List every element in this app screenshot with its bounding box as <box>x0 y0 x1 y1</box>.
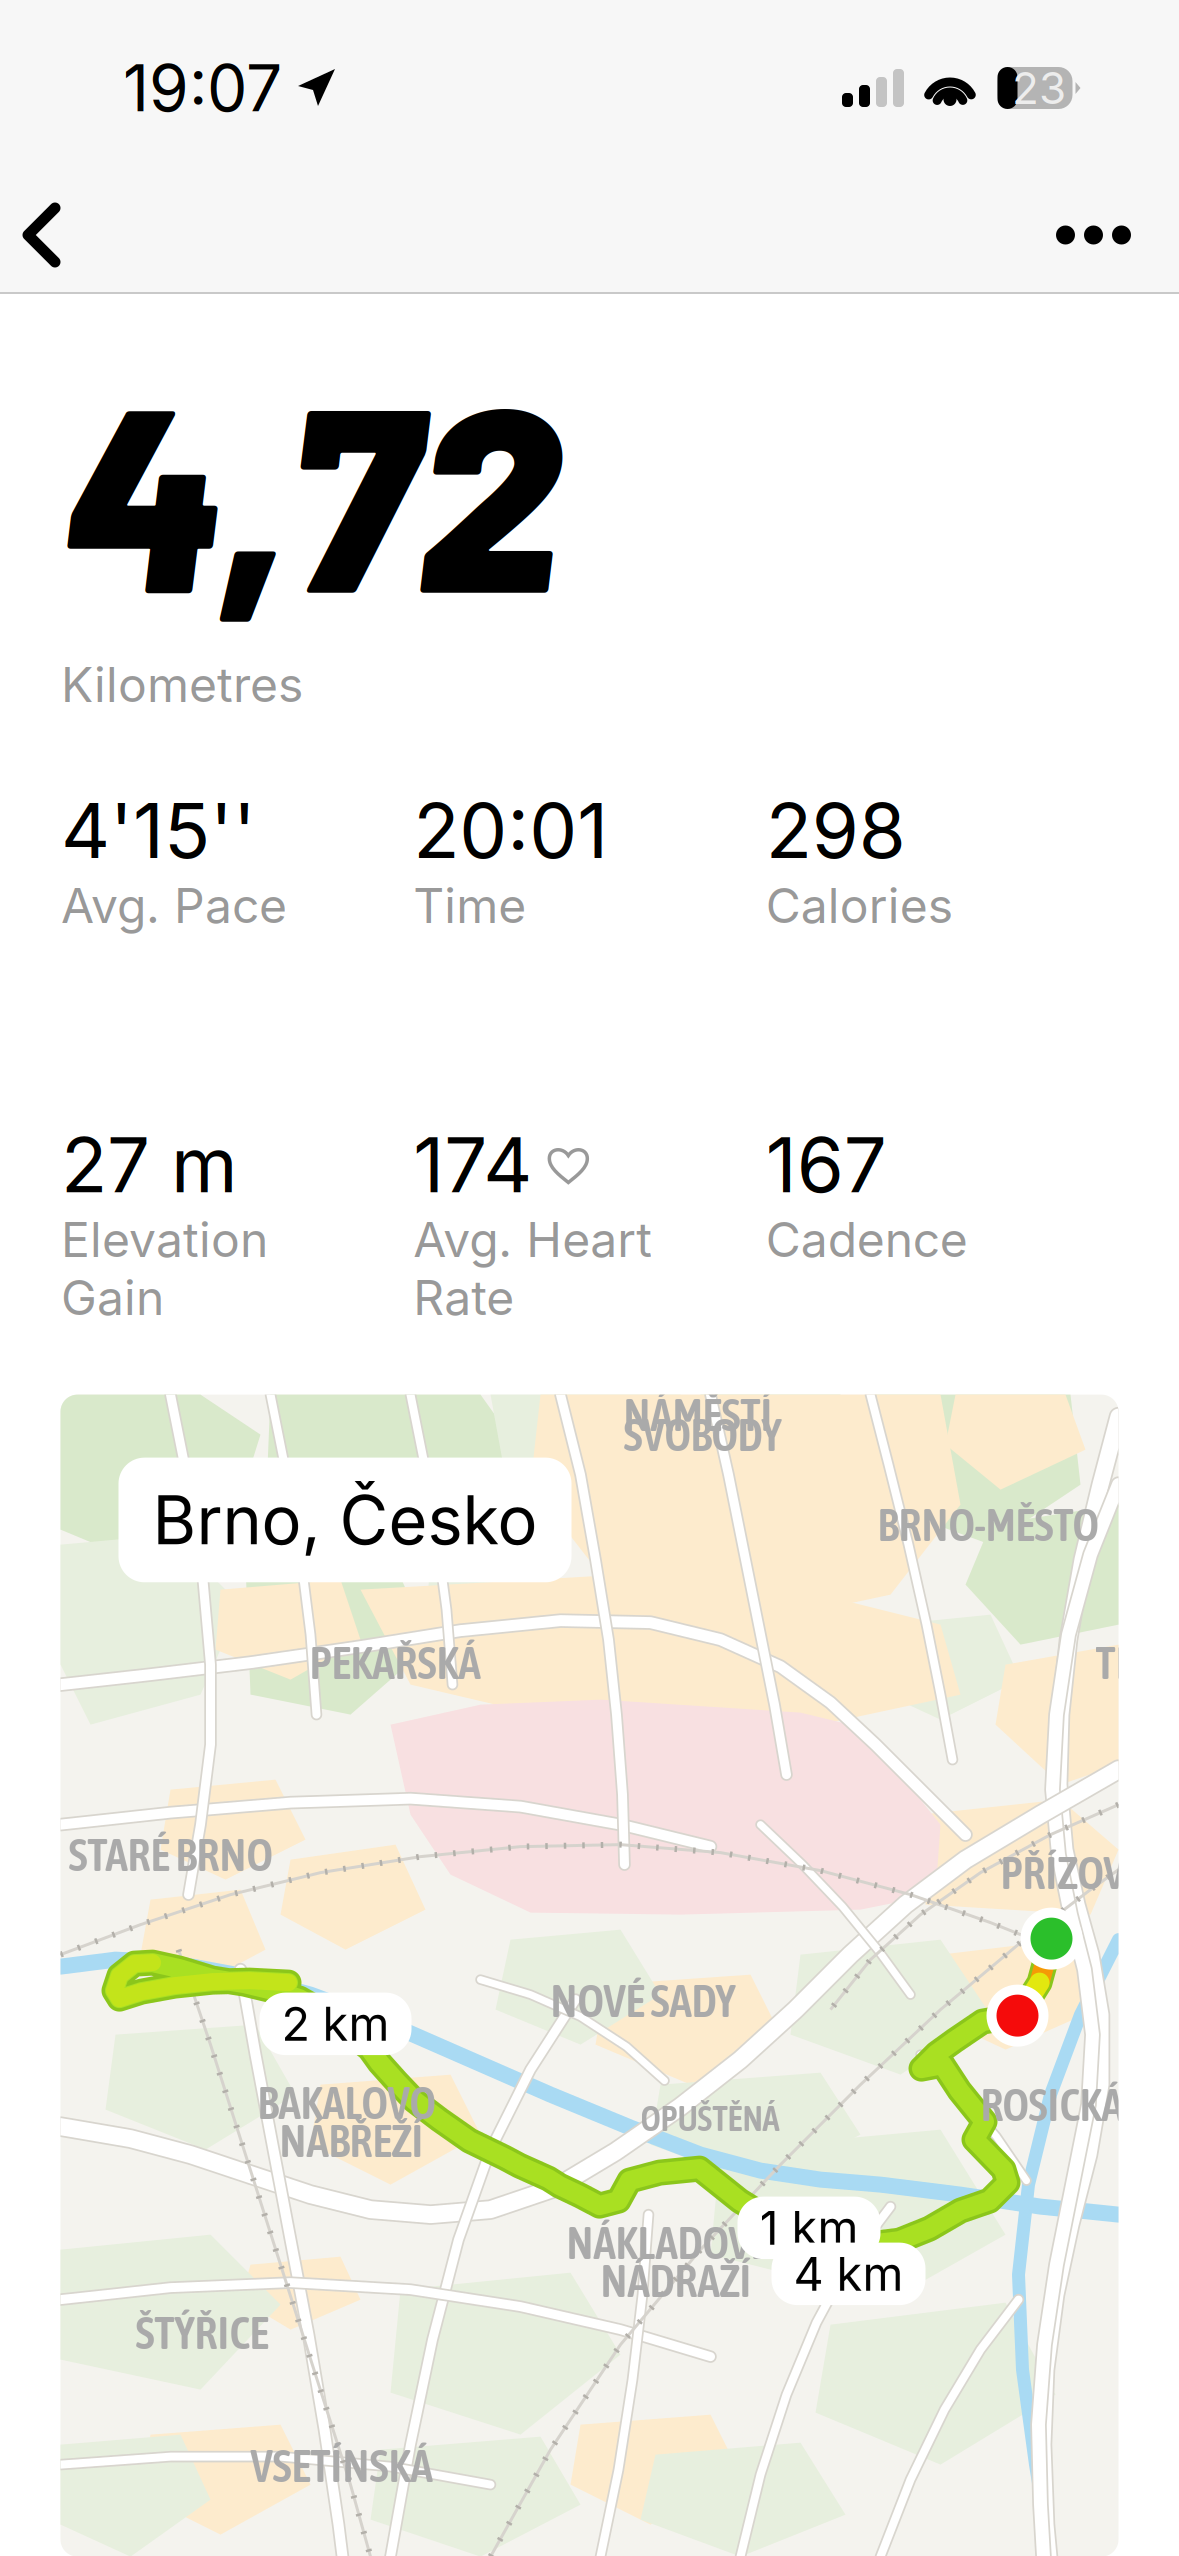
staticText: VSETÍNSKÁ <box>250 2440 432 2492</box>
staticText: Elevation <box>61 1210 268 1269</box>
staticText: BAKALOVO <box>257 2077 435 2129</box>
button[interactable]: More options <box>1026 181 1179 288</box>
staticText: PŘÍZOVÁ <box>1000 1847 1146 1899</box>
staticText: 167 <box>766 1118 887 1210</box>
staticText: ŠTÝŘICE <box>135 2307 268 2359</box>
staticText: Brno, Česko <box>152 1480 537 1560</box>
staticText: 4,72 <box>61 334 561 644</box>
staticText: Calories <box>766 876 953 934</box>
staticText: Cadence <box>766 1210 968 1269</box>
staticText: 4'15'' <box>61 784 256 876</box>
staticText: 20:01 <box>413 784 608 876</box>
staticText: 174 <box>413 1118 532 1210</box>
staticText: BRNO-MĚSTO <box>877 1499 1098 1551</box>
staticText: 298 <box>766 784 906 876</box>
staticText: Kilometres <box>61 655 303 713</box>
staticText: Gain <box>61 1268 164 1327</box>
staticText: 4 km <box>793 2246 903 2302</box>
staticText: NÁMĚSTÍ <box>623 1389 772 1441</box>
staticText: 19:07 <box>123 49 282 127</box>
staticText: Time <box>413 876 526 934</box>
staticText: NÁBŘEŽÍ <box>279 2115 423 2167</box>
staticText: 1 km <box>759 2200 858 2256</box>
staticText: ROSICKÁ <box>980 2079 1123 2131</box>
staticText: Avg. Pace <box>61 876 287 934</box>
staticText: SVOBODY <box>623 1409 781 1461</box>
staticText: PEKAŘSKÁ <box>309 1637 480 1689</box>
staticText: Rate <box>413 1268 514 1327</box>
staticText: 23 <box>1012 61 1066 115</box>
staticText: TŘ <box>1095 1637 1138 1689</box>
staticText: OPUŠTĚNÁ <box>640 2099 779 2138</box>
staticText: 27 m <box>61 1118 238 1210</box>
staticText: NÁKLADOVÉ <box>566 2217 769 2269</box>
staticText: 2 km <box>281 1996 389 2052</box>
staticText: NÁDRAŽÍ <box>600 2255 751 2307</box>
staticText: STARÉ BRNO <box>68 1829 272 1881</box>
staticText: NOVÉ SADY <box>550 1975 735 2027</box>
button[interactable]: Back <box>0 181 91 289</box>
staticText: Avg. Heart <box>413 1210 652 1269</box>
